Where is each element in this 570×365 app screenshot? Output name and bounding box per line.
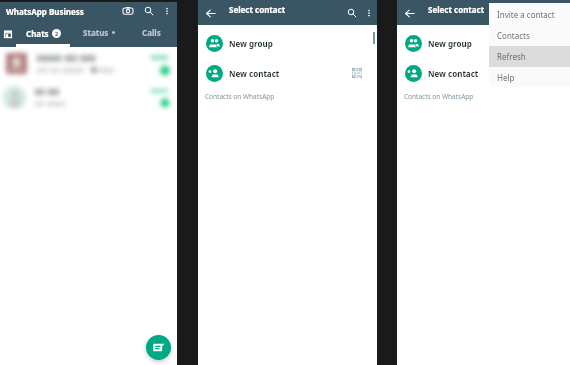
staticText: WhatsApp Business	[6, 6, 84, 17]
button[interactable]: Back	[402, 6, 416, 20]
button[interactable]: New contact	[198, 61, 377, 86]
button[interactable]: New group	[397, 31, 570, 56]
staticText: Select contact	[428, 4, 485, 15]
staticText: Help	[497, 72, 515, 83]
button[interactable]: Business tools	[2, 28, 14, 40]
staticText: New contact	[428, 68, 479, 79]
staticText: New group	[428, 38, 472, 49]
button[interactable]: Help	[489, 67, 570, 87]
button[interactable]: Search	[343, 4, 361, 22]
staticText: Contacts on WhatsApp	[404, 92, 474, 101]
staticText: New contact	[229, 68, 280, 79]
staticText: Select contact	[229, 4, 286, 15]
button[interactable]: Camera	[118, 1, 138, 21]
staticText: Calls	[142, 27, 161, 38]
button[interactable]: More options	[159, 3, 175, 19]
staticText: New group	[229, 38, 273, 49]
staticText: Contacts	[497, 30, 530, 41]
button[interactable]: More options	[554, 5, 570, 21]
button[interactable]	[0, 47, 177, 80]
button[interactable]: Refresh	[489, 46, 570, 67]
button[interactable]: Contacts	[489, 25, 570, 46]
button[interactable]: New contact	[397, 61, 570, 86]
staticText: Status	[83, 27, 109, 38]
button[interactable]: Invite a contact	[489, 4, 570, 25]
staticText: Invite a contact	[497, 9, 555, 20]
button[interactable]: More options	[361, 5, 377, 21]
button[interactable]: Calls	[142, 27, 161, 38]
staticText: Contacts on WhatsApp	[205, 92, 275, 101]
staticText: Chats	[26, 28, 49, 39]
button[interactable]: Search	[536, 4, 554, 22]
staticText: Refresh	[497, 51, 526, 62]
button[interactable]: Status	[83, 27, 115, 38]
button[interactable]: Chats	[16, 25, 70, 41]
button[interactable]: New chat	[146, 335, 171, 360]
staticText: 2	[55, 30, 59, 37]
button[interactable]: Search	[139, 1, 159, 21]
button[interactable]: New group	[198, 31, 377, 56]
button[interactable]: Back	[203, 6, 217, 20]
button[interactable]	[0, 80, 177, 114]
